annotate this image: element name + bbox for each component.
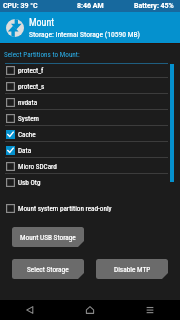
staticText: Mount USB Storage: [20, 233, 76, 242]
staticText: Mount system partition read-only: [18, 204, 112, 212]
staticText: CPU: 39 °C: [3, 2, 38, 10]
button[interactable]: Select Storage: [12, 259, 84, 279]
staticText: Battery: 45%: [134, 2, 174, 10]
button[interactable]: Recent apps: [120, 300, 180, 320]
staticText: Data: [18, 146, 32, 154]
staticText: Micro SDCard: [18, 162, 57, 170]
staticText: System: [18, 114, 39, 122]
button[interactable]: System: [0, 110, 180, 126]
staticText: Usb Otg: [18, 178, 41, 186]
button[interactable]: Data: [0, 142, 180, 158]
staticText: protect_f: [18, 66, 44, 74]
button[interactable]: Mount USB Storage: [12, 227, 84, 247]
button[interactable]: Micro SDCard: [0, 158, 180, 174]
button[interactable]: Cache: [0, 126, 180, 142]
other: TWRP logo: [6, 19, 24, 37]
button[interactable]: Home: [60, 300, 120, 320]
staticText: 8:46 AM: [77, 2, 104, 10]
button[interactable]: protect_s: [0, 78, 180, 94]
button[interactable]: Usb Otg: [0, 174, 180, 188]
staticText: Mount: [29, 17, 55, 29]
button[interactable]: Back: [0, 300, 60, 320]
button[interactable]: nvdata: [0, 94, 180, 110]
button[interactable]: protect_f: [0, 64, 180, 78]
staticText: Disable MTP: [114, 265, 151, 274]
staticText: Storage: Internal Storage (10590 MB): [29, 30, 140, 39]
staticText: nvdata: [18, 98, 38, 106]
button[interactable]: Mount system partition read-only: [0, 201, 180, 215]
staticText: Select Partitions to Mount:: [4, 50, 80, 58]
staticText: Cache: [18, 130, 36, 138]
button[interactable]: Disable MTP: [96, 259, 168, 279]
staticText: Select Storage: [27, 265, 69, 274]
staticText: protect_s: [18, 82, 45, 90]
